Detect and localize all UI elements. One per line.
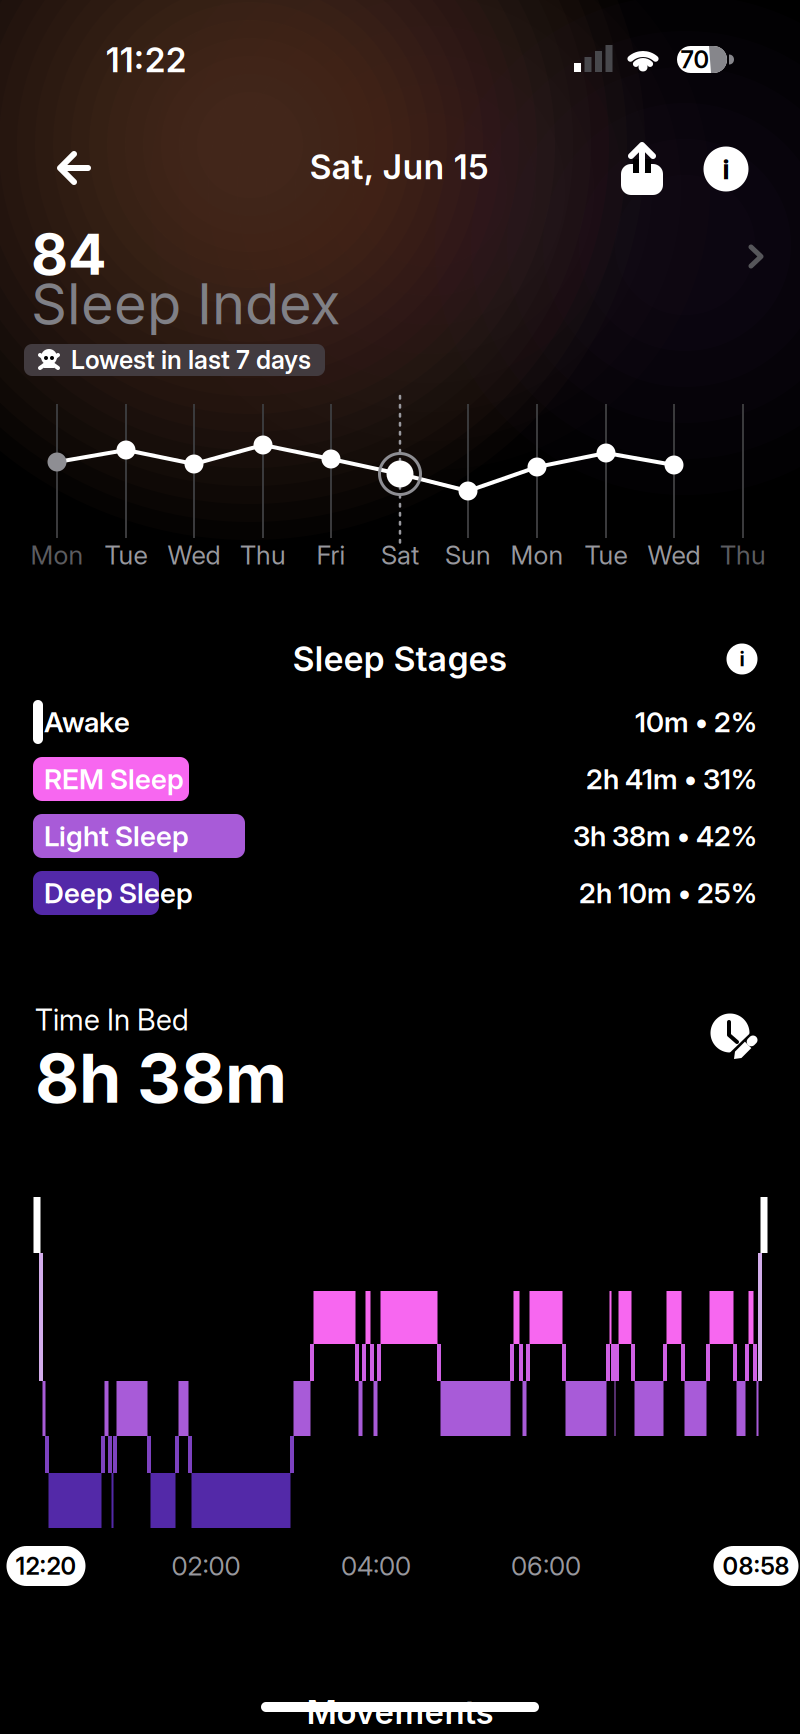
staticText: Sun xyxy=(445,540,491,570)
staticText: 2h 41m • 31% xyxy=(586,762,757,795)
button[interactable]: Sleep end 08:58 xyxy=(713,1546,798,1586)
staticText: i xyxy=(722,152,729,185)
button[interactable]: About sleep stages xyxy=(720,637,764,681)
staticText: Mon xyxy=(510,540,563,570)
staticText: Wed xyxy=(647,540,700,570)
staticText: 08:58 xyxy=(722,1552,789,1580)
staticText: 8h 38m xyxy=(35,1038,287,1118)
button[interactable]: Sleep start 12:20 xyxy=(6,1546,85,1586)
staticText: Sat xyxy=(381,540,419,570)
staticText: 04:00 xyxy=(341,1551,411,1581)
staticText: Sat, Jun 15 xyxy=(309,147,488,187)
button[interactable]: Back xyxy=(44,138,104,198)
staticText: Mon xyxy=(30,540,83,570)
staticText: 10m • 2% xyxy=(635,705,757,738)
staticText: Lowest in last 7 days xyxy=(71,345,311,375)
staticText: 2h 10m • 25% xyxy=(579,876,757,909)
staticText: Light Sleep xyxy=(44,819,189,852)
staticText: Deep Sleep xyxy=(44,876,193,909)
staticText: Awake xyxy=(44,705,130,738)
button[interactable]: Edit time in bed xyxy=(702,1004,766,1068)
staticText: 11:22 xyxy=(105,40,186,80)
button[interactable]: Share xyxy=(612,139,672,199)
button[interactable]: Info xyxy=(696,139,756,199)
staticText: Sleep Stages xyxy=(292,639,507,679)
staticText: Time In Bed xyxy=(35,1003,189,1037)
staticText: Movements xyxy=(306,1692,493,1731)
staticText: REM Sleep xyxy=(44,762,184,795)
staticText: 12:20 xyxy=(15,1552,76,1580)
staticText: 06:00 xyxy=(511,1551,581,1581)
staticText: 3h 38m • 42% xyxy=(573,819,757,852)
staticText: Thu xyxy=(720,540,766,570)
staticText: 70 xyxy=(680,45,709,74)
staticText: 84 xyxy=(31,220,107,288)
staticText: Fri xyxy=(316,540,345,570)
staticText: i xyxy=(739,647,744,671)
staticText: Tue xyxy=(104,540,147,570)
staticText: Sleep Index xyxy=(31,271,341,337)
staticText: Tue xyxy=(584,540,627,570)
staticText: Wed xyxy=(167,540,220,570)
staticText: 02:00 xyxy=(171,1551,240,1581)
staticText: Thu xyxy=(240,540,286,570)
button[interactable]: Sleep Index details xyxy=(0,210,800,360)
